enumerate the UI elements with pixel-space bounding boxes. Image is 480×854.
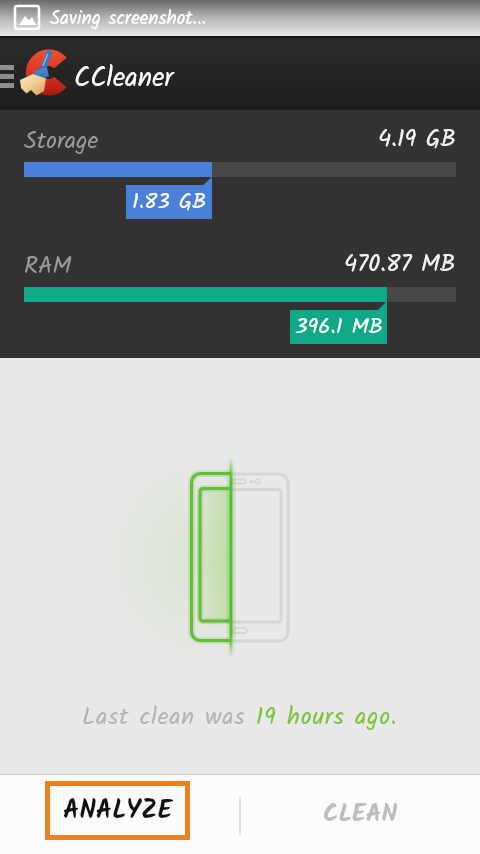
staticText: CLEAN	[323, 794, 398, 834]
staticText: Last clean was 19 hours ago.	[82, 698, 398, 736]
staticText: 470.87 MB	[344, 245, 456, 283]
staticText: Saving screenshot...	[50, 4, 207, 34]
staticText: Storage	[24, 122, 99, 160]
staticText: 1.83 GB	[132, 185, 207, 219]
staticText: CCleaner	[74, 57, 174, 100]
staticText: RAM	[24, 247, 72, 285]
button[interactable]: CLEAN	[240, 774, 480, 854]
staticText: 396.1 MB	[295, 310, 383, 344]
staticText: 4.19 GB	[378, 120, 456, 158]
staticText: ANALYZE	[63, 790, 173, 831]
button[interactable]: ANALYZE	[45, 781, 190, 840]
button[interactable]	[0, 65, 14, 88]
